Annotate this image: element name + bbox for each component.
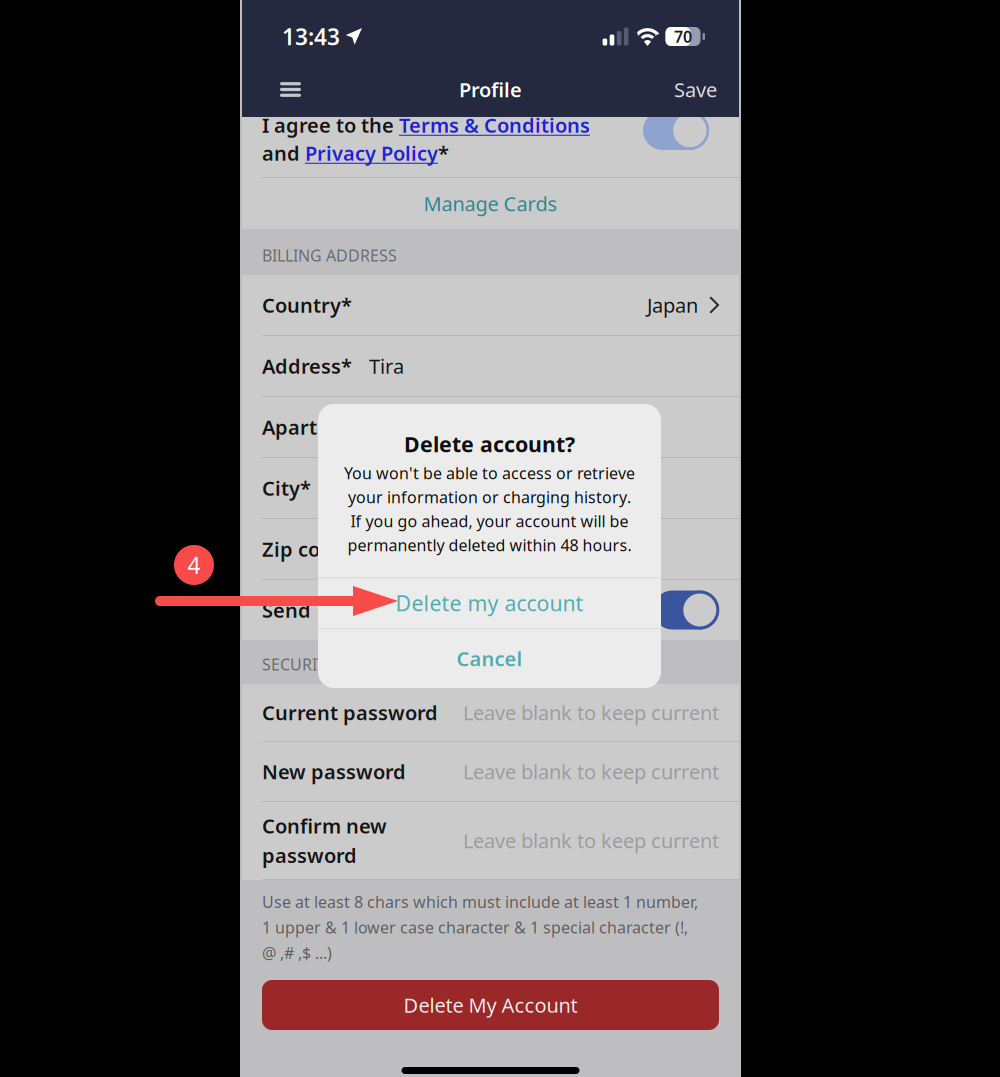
button[interactable]: Country* [242,275,739,335]
staticText: New password [262,758,406,785]
staticText: 13:43 [282,21,340,51]
staticText: Current password [262,699,438,726]
staticText: and [262,140,305,166]
staticText: SECURITY [262,654,335,675]
button[interactable]: Delete my account [318,578,661,628]
staticText: Privacy Policy [305,140,438,166]
staticText: Leave blank to keep current [463,827,719,854]
staticText: Use at least 8 chars which must include … [262,891,698,912]
staticText: 1 upper & 1 lower case character & 1 spe… [262,917,688,938]
staticText: Country* [262,292,352,318]
staticText: password [262,842,357,869]
staticText: I agree to the [262,112,399,138]
staticText: permanently deleted within 48 hours. [347,534,631,556]
button[interactable]: Menu [280,62,336,117]
staticText: Delete my account [395,589,583,617]
staticText: * [438,140,449,166]
staticText: You won't be able to access or retrieve [344,462,635,484]
staticText: If you go ahead, your account will be [350,510,628,532]
staticText: Confirm new [262,812,387,839]
staticText: Address* [262,353,352,379]
staticText: Cancel [456,645,522,672]
staticText: 4 [187,550,200,580]
staticText: Delete account? [404,430,575,458]
staticText: @ ,# ,$ ...) [262,942,332,963]
button[interactable]: Save [637,62,717,117]
staticText: Leave blank to keep current [463,758,719,785]
staticText: 70 [674,26,692,47]
staticText: Japan [647,292,698,318]
staticText: Save [674,76,717,103]
staticText: Manage Cards [423,190,557,217]
button[interactable]: Cancel [318,629,661,688]
button[interactable]: I agree toggle [643,111,709,150]
staticText: Delete My Account [403,992,577,1018]
staticText: Send [262,597,311,623]
button[interactable]: Manage Cards [242,178,739,229]
staticText: Profile [459,76,522,103]
staticText: Tira [369,353,404,379]
staticText: Terms & Conditions [399,112,590,138]
staticText: City* [262,475,311,501]
button[interactable]: Send toggle [653,590,719,629]
staticText: BILLING ADDRESS [262,245,397,266]
staticText: your information or charging history. [348,486,631,508]
staticText: Apartment [262,414,369,440]
button[interactable]: Delete My Account [242,978,739,1032]
staticText: Zip code* [262,536,356,562]
staticText: Leave blank to keep current [463,699,719,726]
